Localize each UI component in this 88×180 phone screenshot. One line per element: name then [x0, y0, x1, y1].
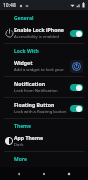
staticText: Add a widget to lock your screen [14, 67, 67, 73]
staticText: Notification [14, 80, 46, 87]
button[interactable]: Add widget [70, 60, 83, 73]
button[interactable]: App Theme [0, 131, 88, 151]
button[interactable]: Toggle [70, 30, 83, 37]
staticText: Widget [14, 59, 33, 66]
staticText: More [14, 156, 27, 163]
button[interactable]: Floating Button [0, 98, 88, 118]
staticText: Enable Lock iPhone Service [14, 26, 67, 33]
button[interactable]: Toggle [70, 105, 83, 112]
staticText: Floating Button [14, 101, 55, 108]
button[interactable]: Home [38, 168, 50, 180]
staticText: Lock With [14, 48, 39, 55]
button[interactable]: Back [13, 168, 25, 180]
staticText: Lock with a floating button [14, 109, 67, 115]
staticText: Theme [14, 123, 31, 130]
staticText: 10:48 [3, 2, 16, 9]
staticText: Dark [14, 142, 24, 148]
button[interactable]: Notification [0, 77, 88, 97]
staticText: Accessibility is enabled [14, 34, 59, 40]
staticText: App Theme [14, 134, 44, 141]
button[interactable]: Toggle [70, 84, 83, 91]
button[interactable]: Enable Lock iPhone Service [0, 23, 88, 43]
button[interactable]: Recents [63, 168, 75, 180]
staticText: Lock from Notification [14, 88, 58, 94]
staticText: General [14, 15, 34, 22]
button[interactable]: Widget [0, 56, 88, 76]
